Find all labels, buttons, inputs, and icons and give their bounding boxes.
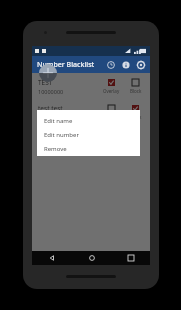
button[interactable]: Add number: [39, 64, 57, 82]
button[interactable]: test test: [32, 99, 150, 125]
button[interactable]: Settings: [135, 59, 146, 70]
button[interactable]: Edit name: [37, 114, 140, 128]
button[interactable]: Information: [120, 59, 131, 70]
button[interactable]: Overlay: [103, 105, 120, 120]
button[interactable]: History: [105, 59, 116, 70]
button[interactable]: Block: [127, 79, 144, 94]
button[interactable]: TEST: [32, 73, 150, 99]
staticText: Edit name: [44, 117, 73, 125]
staticText: TEST: [38, 78, 53, 87]
staticText: test test: [38, 104, 63, 113]
button[interactable]: Back: [32, 251, 72, 265]
staticText: Block: [130, 88, 142, 94]
staticText: 20000000: [38, 114, 64, 121]
button[interactable]: Block: [127, 105, 144, 120]
staticText: Block: [130, 114, 142, 120]
button[interactable]: Edit number: [37, 128, 140, 142]
button[interactable]: Remove: [37, 142, 140, 156]
button[interactable]: Recent apps: [111, 251, 150, 265]
staticText: Remove: [44, 145, 67, 153]
staticText: 10000000: [38, 88, 64, 95]
staticText: Edit number: [44, 131, 79, 139]
button[interactable]: Overlay: [103, 79, 120, 94]
staticText: Overlay: [103, 88, 120, 94]
staticText: Number Blacklist: [37, 60, 95, 70]
button[interactable]: Home: [72, 251, 111, 265]
